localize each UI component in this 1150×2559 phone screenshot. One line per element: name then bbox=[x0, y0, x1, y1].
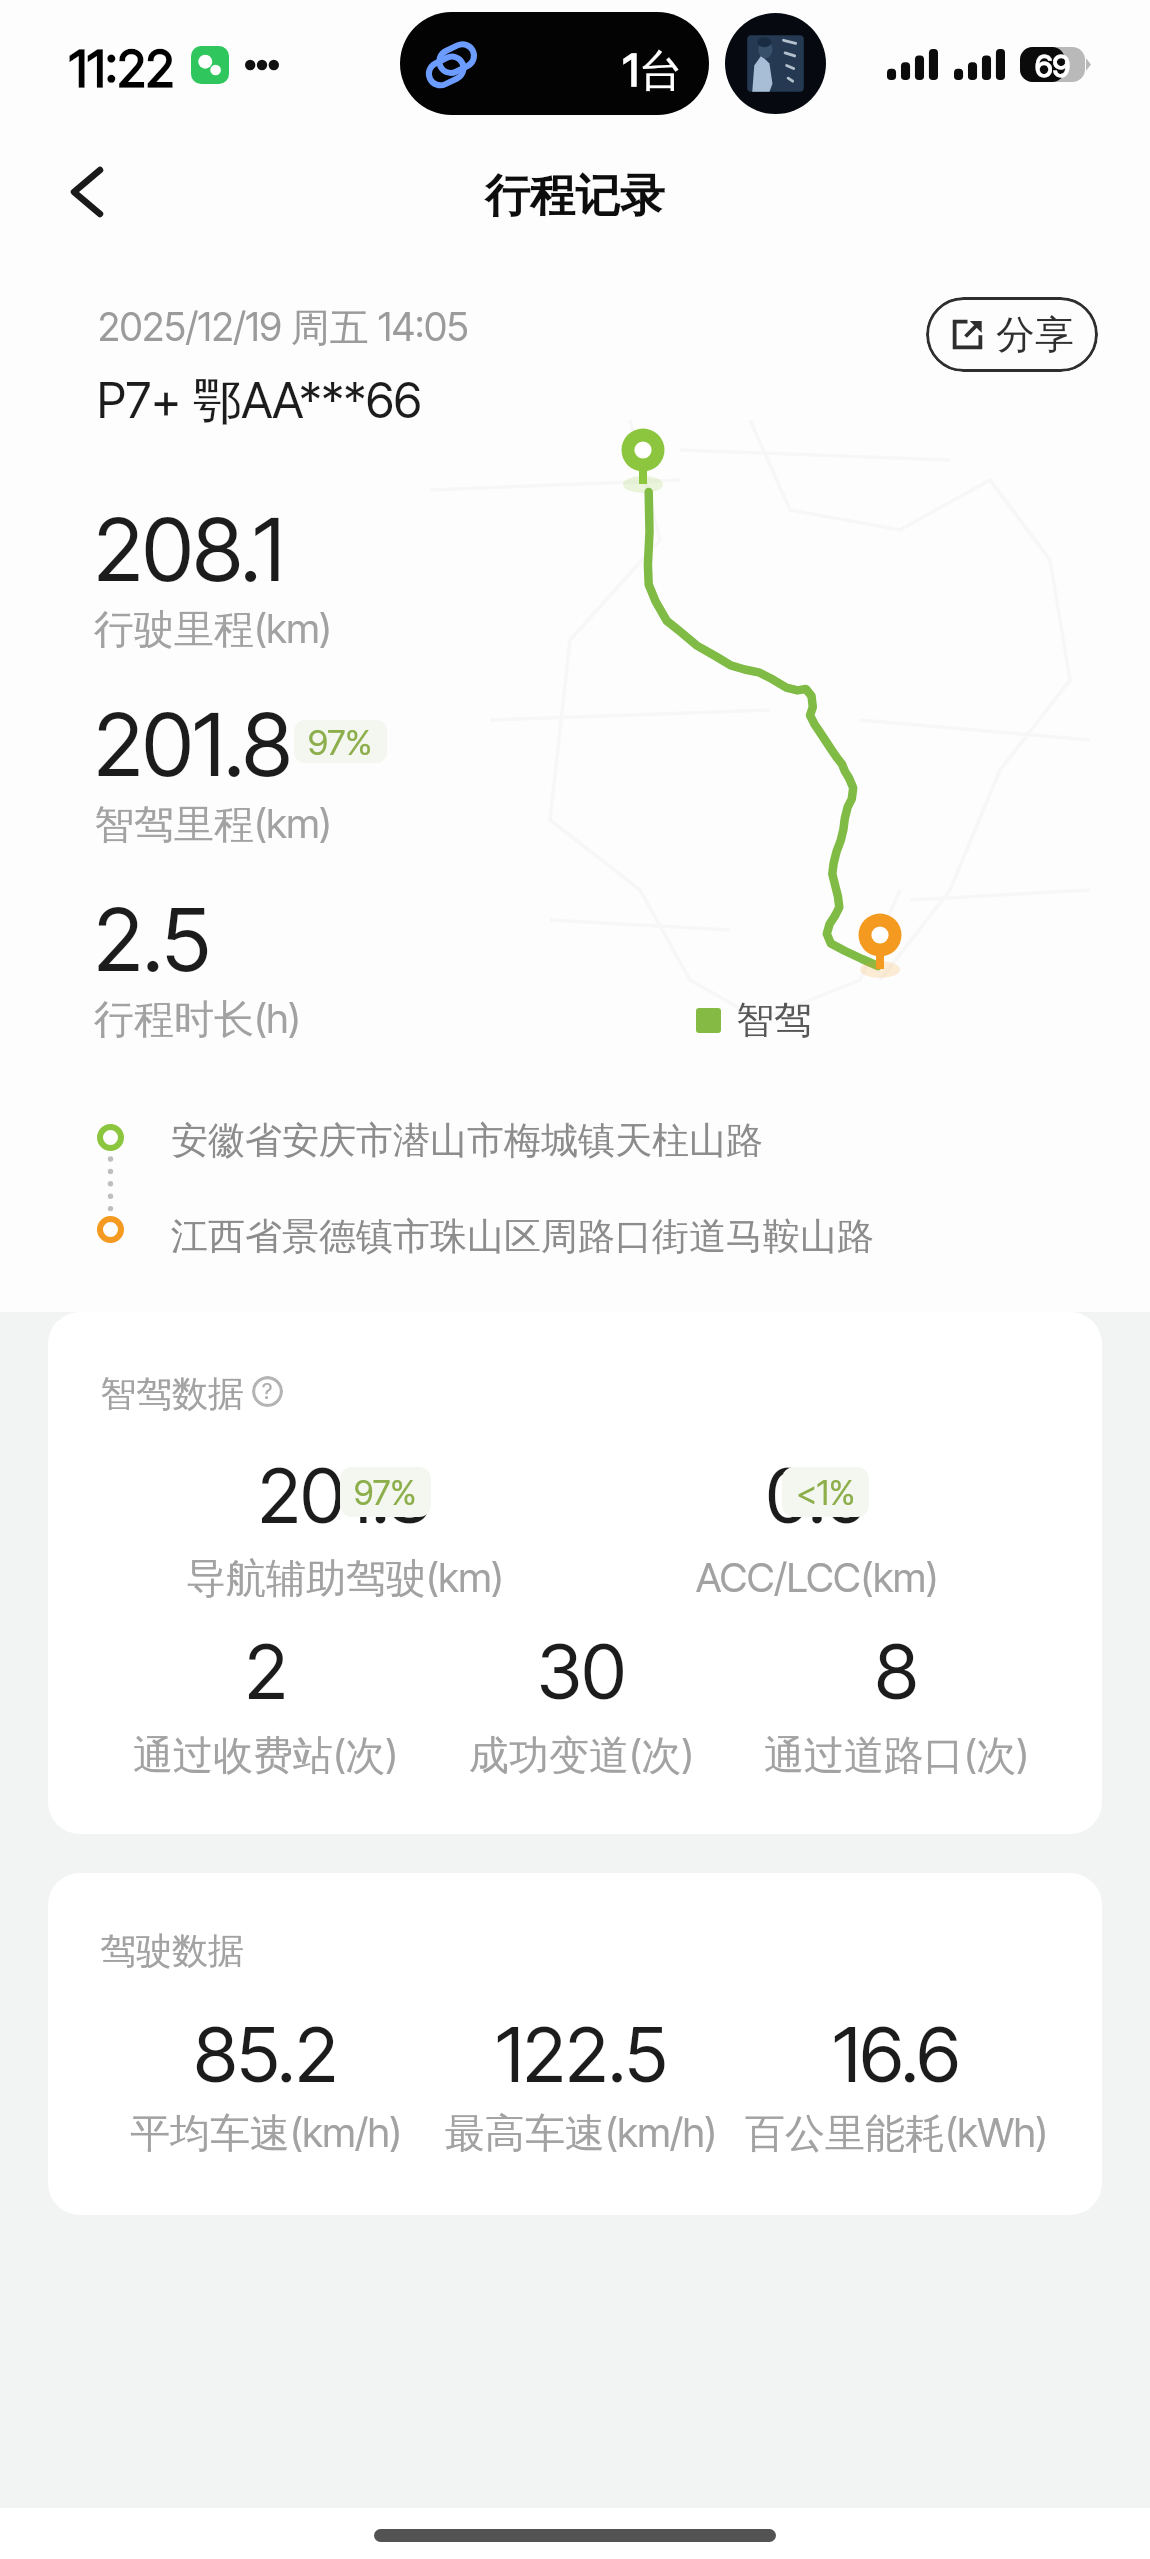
staticText: <1% bbox=[796, 1472, 855, 1513]
staticText: 16.6 bbox=[833, 2008, 960, 2100]
staticText: 最高车速(km/h) bbox=[445, 2108, 718, 2159]
staticText: 2.5 bbox=[94, 887, 211, 992]
staticText: 8 bbox=[875, 1625, 919, 1717]
staticText: 2 bbox=[245, 1625, 288, 1717]
staticText: 122.5 bbox=[496, 2008, 668, 2100]
staticText: 分享 bbox=[996, 310, 1074, 359]
staticText: 智驾 bbox=[736, 996, 812, 1044]
staticText: 97% bbox=[308, 721, 373, 763]
staticText: 智驾里程(km) bbox=[94, 799, 332, 850]
staticText: 30 bbox=[537, 1625, 626, 1717]
button[interactable]: 分享 bbox=[926, 297, 1098, 372]
staticText: 导航辅助驾驶(km) bbox=[186, 1553, 504, 1604]
staticText: 11:22 bbox=[69, 38, 175, 100]
button[interactable]: Back bbox=[36, 136, 138, 248]
staticText: 平均车速(km/h) bbox=[130, 2108, 403, 2159]
staticText: 201.8 bbox=[94, 692, 292, 797]
staticText: 行驶里程(km) bbox=[94, 604, 332, 655]
staticText: 驾驶数据 bbox=[100, 1928, 244, 1973]
staticText: ACC/LCC(km) bbox=[696, 1553, 939, 1601]
staticText: 69 bbox=[1035, 47, 1071, 82]
staticText: 行程时长(h) bbox=[94, 994, 301, 1045]
staticText: 行程记录 bbox=[485, 168, 665, 225]
button[interactable]: Help bbox=[252, 1376, 283, 1407]
staticText: 百公里能耗(kWh) bbox=[745, 2108, 1049, 2159]
staticText: 0.0 bbox=[766, 1449, 869, 1541]
staticText: 201.8 bbox=[258, 1449, 431, 1541]
staticText: 安徽省安庆市潜山市梅城镇天柱山路 bbox=[171, 1117, 763, 1164]
staticText: 1台 bbox=[623, 43, 683, 99]
staticText: 208.1 bbox=[94, 497, 285, 602]
staticText: 97% bbox=[354, 1472, 417, 1513]
staticText: 江西省景德镇市珠山区周路口街道马鞍山路 bbox=[171, 1213, 874, 1260]
staticText: 通过道路口(次) bbox=[764, 1730, 1030, 1781]
staticText: P7+ 鄂AA***66 bbox=[97, 371, 422, 433]
staticText: 智驾数据 bbox=[100, 1371, 244, 1416]
staticText: 通过收费站(次) bbox=[133, 1730, 399, 1781]
staticText: 2025/12/19 周五 14:05 bbox=[98, 303, 469, 352]
staticText: 85.2 bbox=[194, 2008, 338, 2100]
staticText: 成功变道(次) bbox=[469, 1730, 695, 1781]
staticText: ? bbox=[262, 1378, 273, 1405]
